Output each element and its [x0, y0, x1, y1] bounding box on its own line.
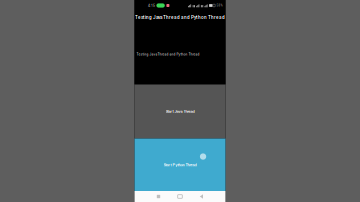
staticText: Testing JavaThread and Python Thread	[135, 15, 225, 20]
button[interactable]: Home	[169, 191, 191, 202]
staticText: 4:15	[148, 3, 155, 7]
button[interactable]: Recents	[148, 191, 169, 202]
button[interactable]: Start Python Thread	[134, 138, 225, 191]
button[interactable]: Start Java Thread	[134, 84, 225, 138]
staticText: Start Python Thread	[163, 162, 196, 167]
staticText: 58%	[216, 4, 222, 7]
staticText: Start Java Thread	[165, 109, 194, 114]
button[interactable]: Back	[191, 191, 212, 202]
staticText: Testing JavaThread and Python Thread	[136, 52, 199, 56]
